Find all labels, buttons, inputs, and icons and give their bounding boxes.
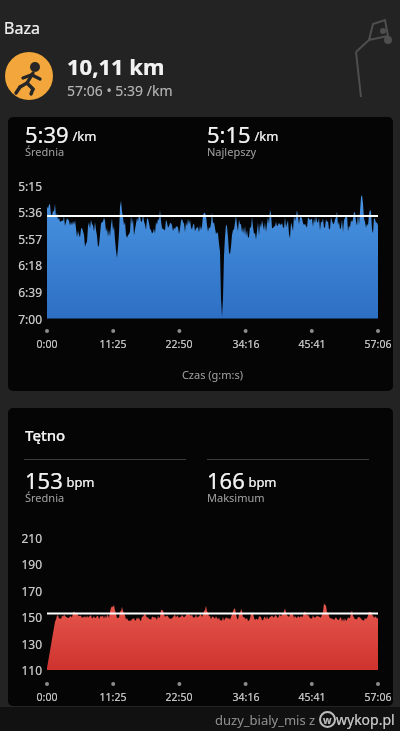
staticText: Najlepszy [207, 144, 257, 159]
staticText: bpm [63, 473, 95, 491]
button[interactable]: 10,11 km [5, 51, 173, 100]
staticText: /km [69, 127, 97, 145]
staticText: wykop.pl [336, 710, 395, 729]
staticText: 57:06 • 5:39 /km [67, 81, 173, 100]
staticText: 45:41 [287, 690, 337, 704]
staticText: 150 [8, 609, 42, 625]
button[interactable]: 153 [25, 465, 187, 511]
button[interactable]: 5:39 [25, 119, 187, 165]
staticText: Tętno [25, 425, 66, 445]
staticText: Średnia [25, 144, 65, 159]
staticText: 34:16 [221, 690, 271, 704]
button[interactable]: 166 [207, 465, 369, 511]
staticText: 153 [25, 465, 63, 495]
staticText: 5:15 [207, 119, 251, 149]
staticText: 5:39 [25, 119, 69, 149]
staticText: 6:39 [8, 284, 42, 300]
staticText: 7:00 [8, 311, 42, 327]
staticText: 6:18 [8, 257, 42, 273]
staticText: 11:25 [88, 690, 138, 704]
staticText: 5:57 [8, 231, 42, 247]
staticText: 5:36 [8, 204, 42, 220]
staticText: Średnia [25, 490, 65, 505]
staticText: 57:06 [353, 690, 393, 704]
button[interactable]: 5:15 [207, 119, 369, 165]
staticText: 130 [8, 636, 42, 652]
staticText: bpm [245, 473, 277, 491]
staticText: 166 [207, 465, 245, 495]
staticText: 210 [8, 530, 42, 546]
staticText: Czas (g:m:s) [20, 367, 393, 382]
staticText: 57:06 [353, 337, 393, 351]
staticText: 0:00 [22, 337, 72, 351]
staticText: 22:50 [154, 337, 204, 351]
staticText: Baza [4, 17, 40, 39]
staticText: Maksimum [207, 490, 265, 505]
staticText: 5:15 [8, 178, 42, 194]
staticText: 190 [8, 556, 42, 572]
staticText: 11:25 [88, 337, 138, 351]
staticText: w [323, 713, 332, 727]
staticText: 170 [8, 583, 42, 599]
staticText: 22:50 [154, 690, 204, 704]
staticText: 0:00 [22, 690, 72, 704]
staticText: 45:41 [287, 337, 337, 351]
staticText: duzy_bialy_mis z [215, 711, 319, 729]
staticText: /km [251, 127, 279, 145]
staticText: 34:16 [221, 337, 271, 351]
staticText: 10,11 km [67, 51, 165, 81]
staticText: 110 [8, 662, 42, 678]
